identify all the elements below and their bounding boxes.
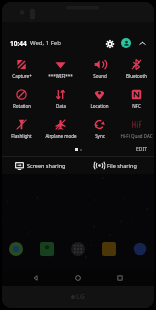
staticText: Bluetooth <box>126 73 147 79</box>
button[interactable]: Bluetooth <box>119 54 154 84</box>
button[interactable]: Hi-Fi Quad DAC <box>119 114 154 144</box>
button[interactable]: Sound <box>80 54 119 84</box>
button[interactable]: NFC <box>119 84 154 114</box>
button[interactable]: Contacts <box>40 242 54 256</box>
staticText: Data <box>56 103 66 109</box>
staticText: Capture+ <box>12 73 32 79</box>
button[interactable]: Phone <box>133 242 147 256</box>
button[interactable]: Location <box>80 84 119 114</box>
button[interactable]: Apps <box>71 242 85 256</box>
button[interactable]: Chrome <box>9 242 23 256</box>
staticText: ***WIFI*** <box>48 73 73 79</box>
button[interactable]: Settings <box>10 28 24 47</box>
staticText: Screen sharing <box>27 162 66 169</box>
staticText: Airplane mode <box>45 133 77 139</box>
staticText: LG <box>76 292 85 302</box>
button[interactable]: File sharing <box>78 157 154 174</box>
button[interactable]: Sync <box>80 114 119 144</box>
button[interactable]: ***WIFI*** <box>41 54 80 84</box>
staticText: EDIT <box>136 146 148 153</box>
button[interactable]: Home <box>70 270 86 286</box>
button[interactable]: EDIT <box>136 146 148 153</box>
button[interactable]: Calendar <box>132 28 146 47</box>
staticText: Rotation <box>13 103 31 109</box>
staticText: Flashlight <box>11 133 32 139</box>
button[interactable]: Battery <box>41 28 55 47</box>
button[interactable]: Screen sharing <box>2 157 78 174</box>
staticText: Sync <box>95 133 105 139</box>
staticText: 10:44 <box>10 39 27 48</box>
button[interactable]: Recents <box>112 270 128 286</box>
button[interactable]: User profile <box>121 38 131 48</box>
staticText: File sharing <box>107 162 137 169</box>
button[interactable]: Rotation <box>2 84 41 114</box>
button[interactable]: Collapse <box>136 37 148 49</box>
button[interactable]: Capture+ <box>2 54 41 84</box>
button[interactable]: File Manager <box>102 28 116 47</box>
staticText: Hi-Fi Quad DAC <box>120 133 153 139</box>
button[interactable]: Settings <box>103 37 116 50</box>
staticText: Sound <box>93 73 107 79</box>
button[interactable]: Data <box>41 84 80 114</box>
button[interactable]: Flashlight <box>2 114 41 144</box>
staticText: Location <box>90 103 109 109</box>
staticText: NFC <box>132 103 141 109</box>
button[interactable]: Airplane mode <box>41 114 80 144</box>
button[interactable]: Back <box>28 270 44 286</box>
button[interactable]: Messages <box>102 242 116 256</box>
staticText: Wed, 1 Feb <box>30 39 61 47</box>
